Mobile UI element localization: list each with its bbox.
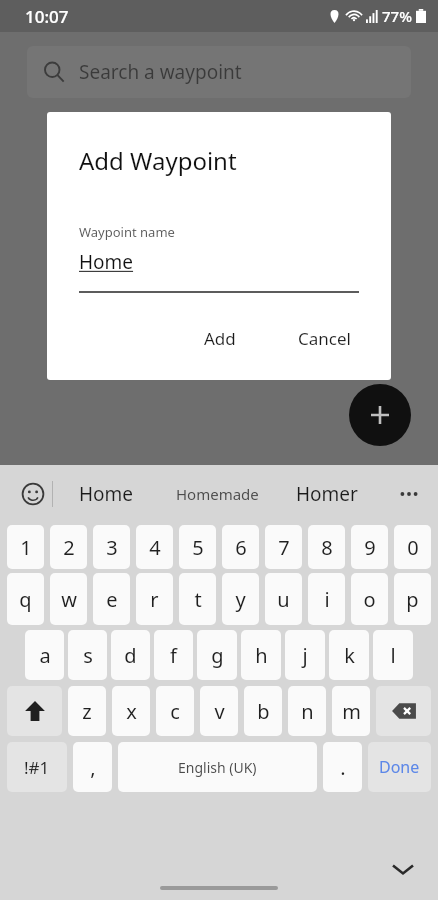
staticText: Add Waypoint — [79, 144, 237, 177]
staticText: x — [126, 698, 137, 725]
button[interactable]: i — [308, 573, 345, 625]
staticText: 8 — [321, 534, 333, 561]
staticText: , — [90, 754, 96, 781]
staticText: 3 — [106, 534, 118, 561]
staticText: . — [340, 754, 346, 781]
button[interactable]: j — [285, 630, 325, 680]
staticText: b — [257, 698, 270, 725]
button[interactable]: Backspace — [376, 686, 431, 736]
button[interactable]: z — [68, 686, 106, 736]
staticText: 7 — [278, 534, 290, 561]
button[interactable]: Hide keyboard — [386, 852, 420, 886]
staticText: k — [344, 642, 355, 669]
staticText: 2 — [63, 534, 75, 561]
button[interactable]: 1 — [7, 525, 44, 569]
button[interactable]: t — [179, 573, 216, 625]
button[interactable]: , — [73, 742, 112, 792]
button[interactable]: b — [244, 686, 282, 736]
button[interactable]: 2 — [50, 525, 87, 569]
staticText: o — [363, 586, 376, 613]
staticText: v — [214, 698, 225, 725]
staticText: i — [324, 586, 330, 613]
button[interactable]: r — [136, 573, 173, 625]
staticText: Add — [204, 327, 236, 350]
staticText: z — [82, 698, 92, 725]
staticText: d — [124, 642, 137, 669]
staticText: n — [301, 698, 314, 725]
staticText: l — [390, 642, 396, 669]
button[interactable]: Shift — [7, 686, 62, 736]
staticText: p — [406, 586, 419, 613]
staticText: q — [19, 586, 32, 613]
staticText: Cancel — [298, 327, 351, 350]
staticText: Homemade — [176, 484, 259, 504]
button[interactable]: Homer — [275, 465, 379, 523]
staticText: y — [235, 586, 246, 613]
button[interactable]: g — [197, 630, 237, 680]
button[interactable]: y — [222, 573, 259, 625]
button[interactable]: h — [241, 630, 281, 680]
button[interactable]: . — [323, 742, 362, 792]
button[interactable]: d — [111, 630, 150, 680]
button[interactable]: 4 — [136, 525, 173, 569]
staticText: Home — [79, 249, 134, 275]
staticText: 0 — [407, 534, 419, 561]
staticText: w — [61, 586, 77, 613]
button[interactable]: v — [200, 686, 238, 736]
button[interactable]: Add waypoint — [349, 384, 411, 446]
button[interactable]: f — [154, 630, 193, 680]
staticText: r — [150, 586, 159, 613]
button[interactable]: Done — [368, 742, 431, 792]
staticText: j — [302, 642, 308, 669]
staticText: 77% — [382, 6, 412, 26]
button[interactable]: Add — [190, 319, 250, 358]
staticText: Search a waypoint — [79, 59, 242, 85]
staticText: g — [211, 642, 224, 669]
button[interactable]: p — [394, 573, 431, 625]
button[interactable]: m — [332, 686, 370, 736]
staticText: 5 — [192, 534, 204, 561]
staticText: 10:07 — [25, 5, 69, 28]
staticText: 9 — [364, 534, 376, 561]
button[interactable]: English (UK) — [118, 742, 317, 792]
staticText: 4 — [149, 534, 161, 561]
staticText: a — [39, 642, 51, 669]
staticText: e — [106, 586, 118, 613]
button[interactable]: 8 — [308, 525, 345, 569]
button[interactable]: !#1 — [7, 742, 67, 792]
button[interactable]: o — [351, 573, 388, 625]
button[interactable]: a — [25, 630, 64, 680]
button[interactable]: 0 — [394, 525, 431, 569]
button[interactable]: Homemade — [159, 465, 275, 523]
staticText: 6 — [235, 534, 247, 561]
button[interactable]: 7 — [265, 525, 302, 569]
button[interactable]: w — [50, 573, 87, 625]
staticText: Waypoint name — [79, 223, 175, 241]
button[interactable]: l — [373, 630, 413, 680]
button[interactable]: x — [112, 686, 150, 736]
button[interactable]: More suggestions — [379, 465, 438, 523]
staticText: t — [194, 586, 202, 613]
button[interactable]: u — [265, 573, 302, 625]
button[interactable]: c — [156, 686, 194, 736]
button[interactable]: q — [7, 573, 44, 625]
staticText: Homer — [296, 481, 358, 507]
button[interactable]: 9 — [351, 525, 388, 569]
button[interactable]: Home — [53, 465, 159, 523]
staticText: s — [83, 642, 93, 669]
button[interactable]: 6 — [222, 525, 259, 569]
button[interactable]: s — [68, 630, 107, 680]
button[interactable]: k — [329, 630, 369, 680]
button[interactable]: 5 — [179, 525, 216, 569]
button[interactable]: Cancel — [284, 319, 365, 358]
staticText: u — [277, 586, 290, 613]
button[interactable]: 3 — [93, 525, 130, 569]
staticText: c — [170, 698, 180, 725]
staticText: English (UK) — [178, 758, 257, 777]
button[interactable]: Emoji — [14, 475, 52, 513]
staticText: h — [255, 642, 268, 669]
button[interactable]: n — [288, 686, 326, 736]
staticText: f — [170, 642, 177, 669]
button[interactable]: Search a waypoint — [27, 46, 411, 98]
button[interactable]: e — [93, 573, 130, 625]
